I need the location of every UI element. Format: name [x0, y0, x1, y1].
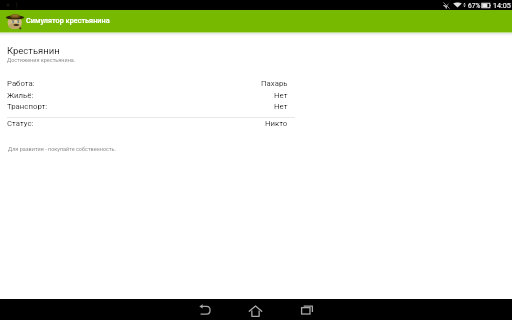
button[interactable]: Recent apps	[287, 299, 327, 320]
staticText: 14:05	[493, 1, 511, 9]
staticText: 67%	[468, 2, 481, 10]
staticText: Никто	[265, 119, 288, 128]
staticText: Жильё:	[7, 91, 34, 100]
button[interactable]: Home	[235, 300, 275, 320]
staticText: Симулятор крестьянина	[26, 16, 110, 25]
staticText: Работа:	[7, 79, 35, 88]
staticText: Крестьянин	[7, 45, 60, 56]
staticText: Статус:	[7, 119, 34, 128]
staticText: Нет	[274, 91, 288, 100]
staticText: Транспорт:	[7, 102, 48, 111]
staticText: Пахарь	[261, 79, 288, 88]
staticText: Нет	[274, 102, 288, 111]
button[interactable]: Back	[185, 299, 225, 320]
staticText: Для развития - покупайте собственность.	[8, 146, 117, 152]
staticText: Достижения крестьянина.	[7, 57, 76, 63]
